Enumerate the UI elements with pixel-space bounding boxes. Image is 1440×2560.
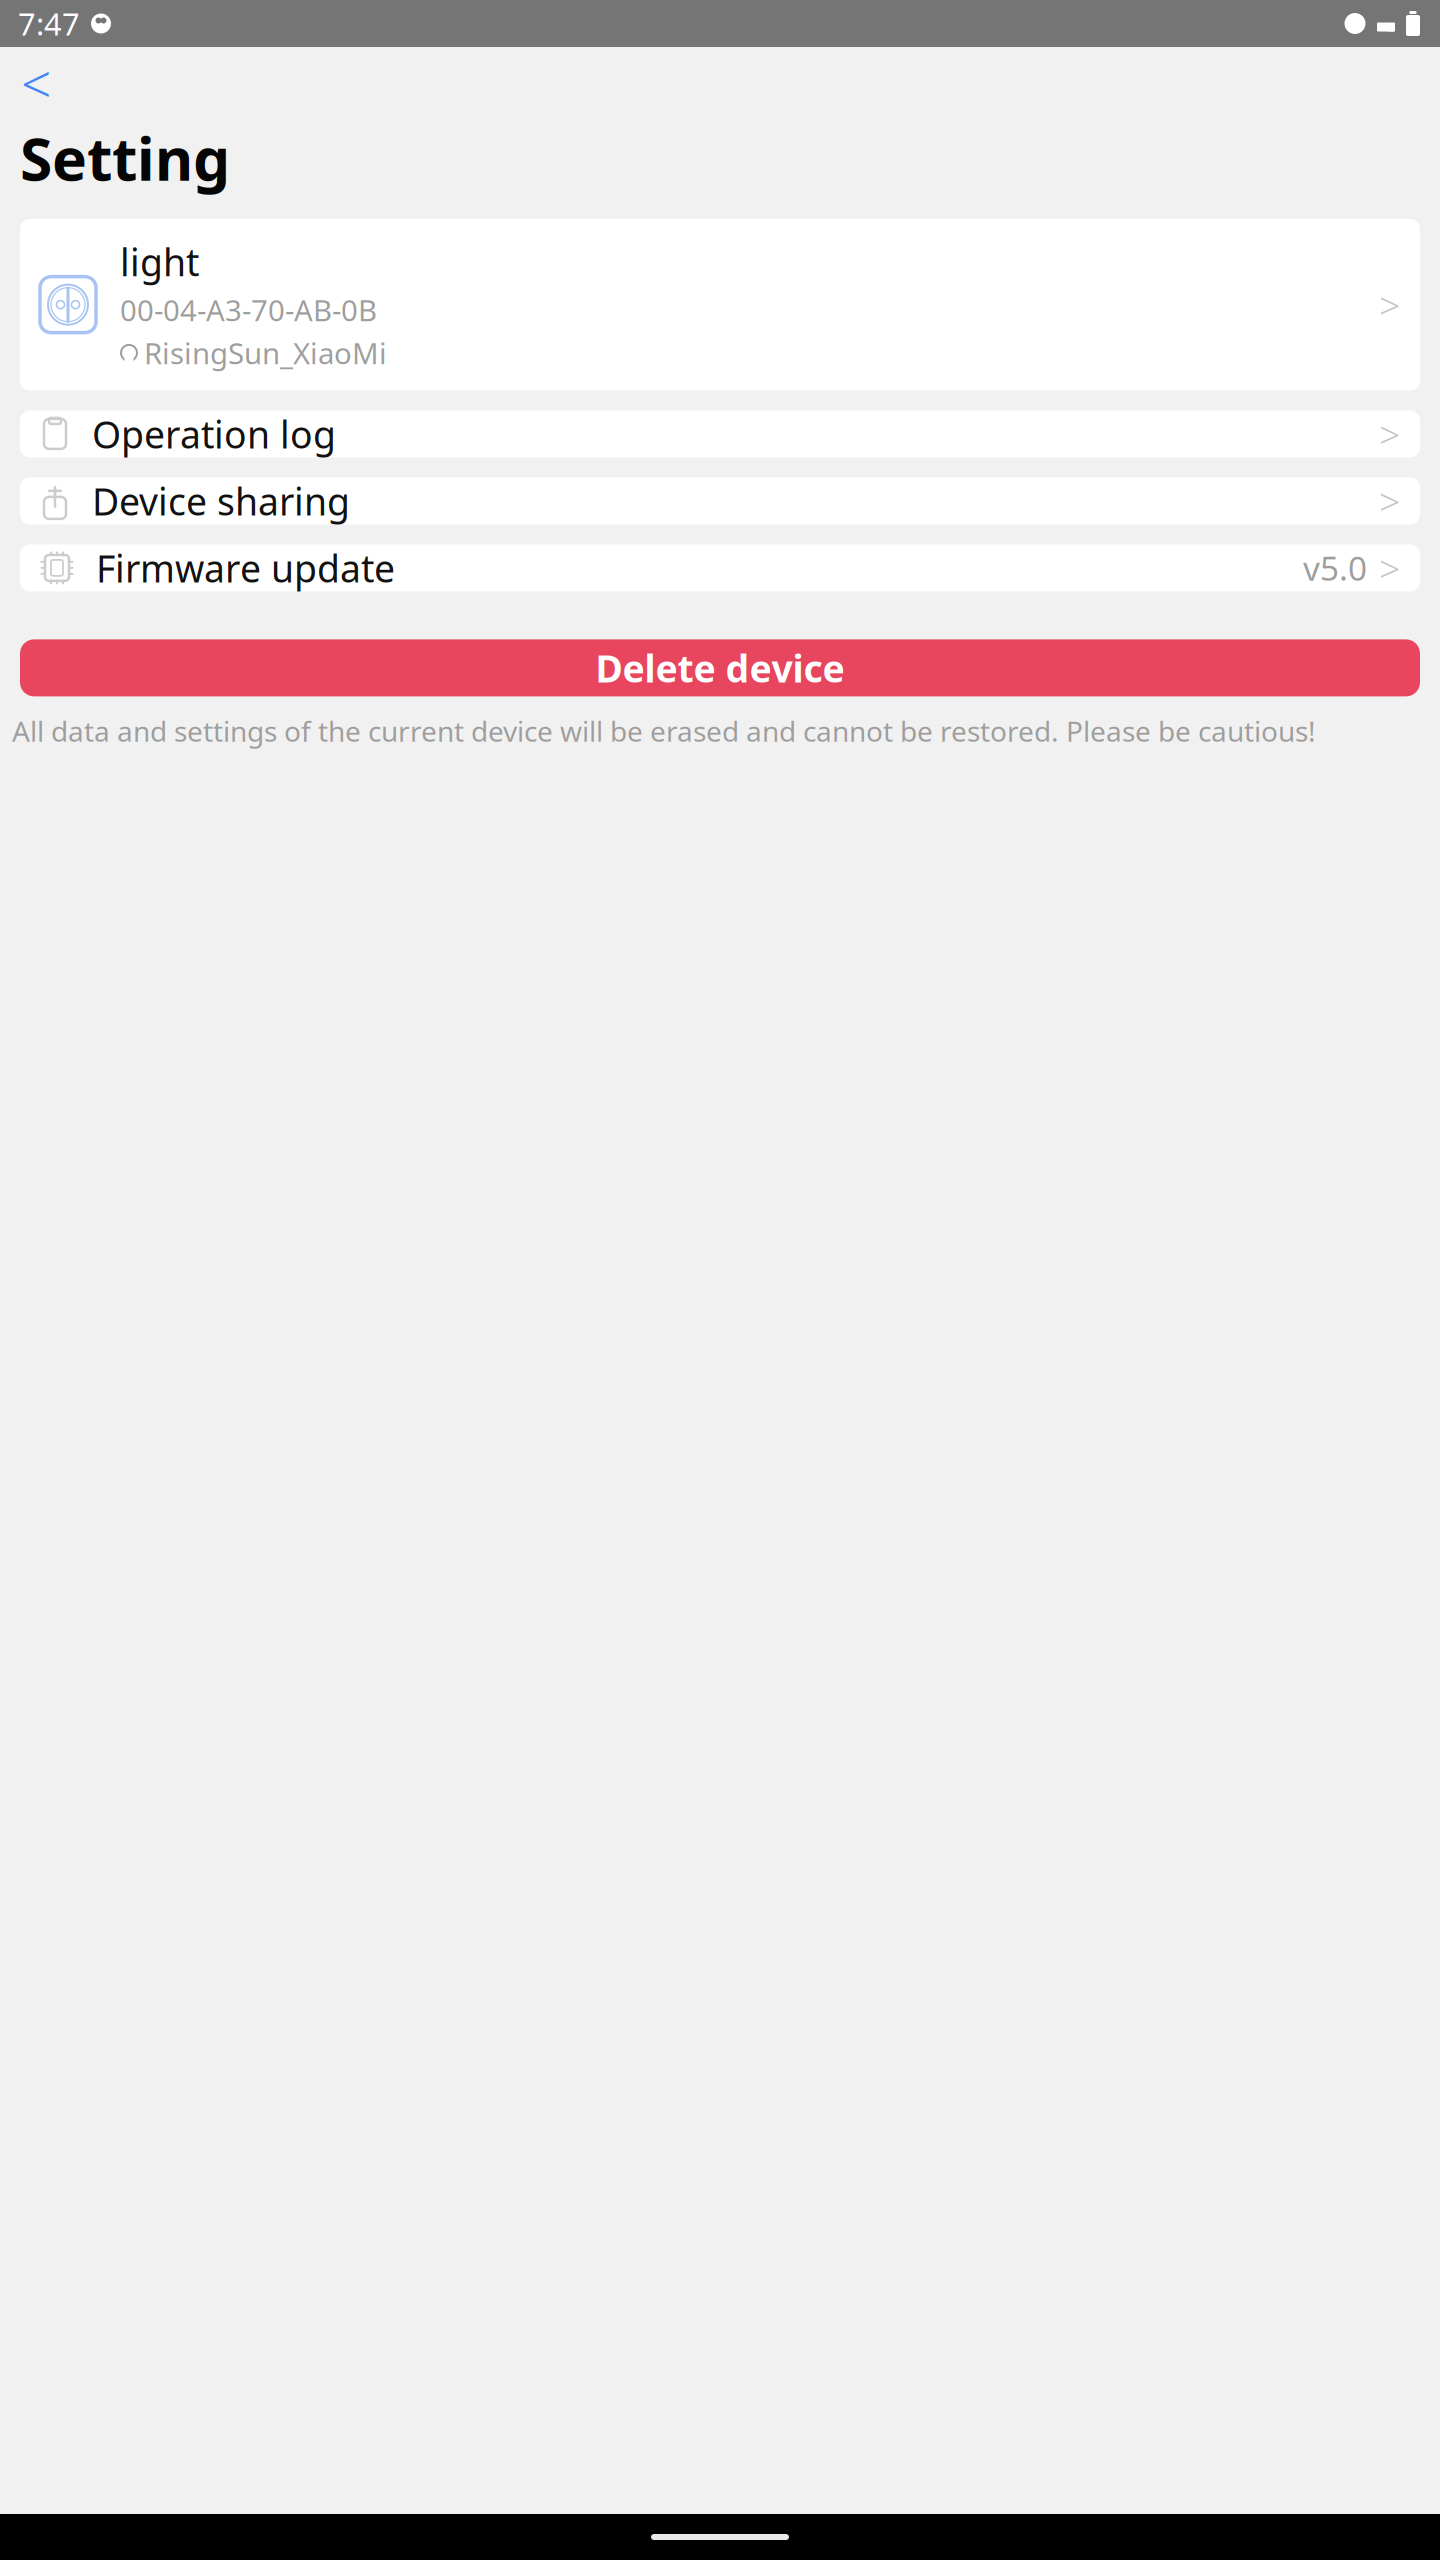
staticText: v5.0 [1303,546,1367,590]
button[interactable]: light [20,219,1420,390]
staticText: < [21,48,51,118]
button[interactable]: Back [6,55,66,111]
staticText: 00-04-A3-70-AB-0B [120,290,377,329]
staticText: Device sharing [92,476,350,526]
button[interactable]: Firmware update [20,544,1420,591]
button[interactable]: Device sharing [20,477,1420,524]
button[interactable]: Delete device [20,639,1420,696]
staticText: Setting [20,119,230,197]
button[interactable]: Operation log [20,410,1420,457]
staticText: All data and settings of the current dev… [12,712,1316,750]
staticText: > [1379,280,1400,329]
staticText: Operation log [92,409,336,459]
staticText: RisingSun_XiaoMi [144,333,387,372]
staticText: Delete device [595,643,844,693]
staticText: Firmware update [96,543,395,593]
staticText: 7:47 [18,3,80,44]
staticText: > [1379,476,1400,526]
staticText: > [1379,409,1400,459]
staticText: > [1379,543,1400,593]
staticText: light [120,237,199,286]
